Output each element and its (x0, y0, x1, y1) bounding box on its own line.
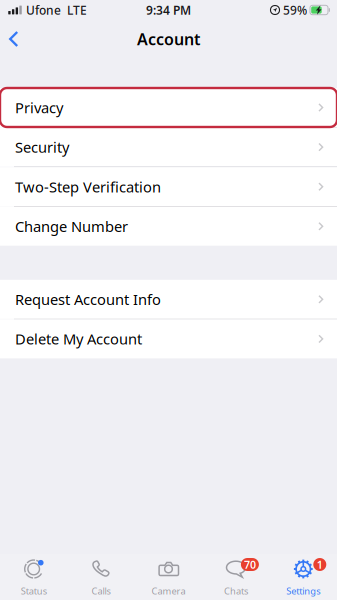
button[interactable]: Two-Step Verification (0, 167, 337, 206)
staticText: Delete My Account (15, 329, 142, 349)
staticText: 1 (317, 557, 323, 572)
button[interactable]: 70 (202, 554, 270, 600)
staticText: LTE (61, 2, 87, 18)
staticText: Two-Step Verification (15, 177, 161, 196)
staticText: Settings (286, 585, 320, 597)
button[interactable]: Privacy (0, 88, 337, 127)
staticText: Status (21, 585, 47, 597)
staticText: Ufone (23, 2, 61, 18)
staticText: Privacy (15, 98, 63, 117)
staticText: Calls (92, 585, 111, 597)
staticText: Account (137, 28, 200, 50)
button[interactable]: Security (0, 128, 337, 167)
staticText: Chats (224, 585, 248, 597)
staticText: 9:34 PM (146, 2, 191, 18)
staticText: 59% (280, 2, 307, 18)
button[interactable]: Request Account Info (0, 280, 337, 319)
button[interactable]: Status (0, 554, 67, 600)
button[interactable]: Delete My Account (0, 319, 337, 358)
staticText: Camera (151, 585, 185, 597)
staticText: Change Number (15, 217, 128, 236)
button[interactable]: Calls (67, 554, 135, 600)
staticText: 70 (244, 557, 256, 572)
button[interactable]: 1 (270, 554, 337, 600)
button[interactable]: Change Number (0, 207, 337, 246)
staticText: Request Account Info (15, 290, 161, 309)
staticText: Security (15, 137, 69, 157)
button[interactable]: Back (0, 24, 31, 54)
button[interactable]: Camera (135, 554, 202, 600)
